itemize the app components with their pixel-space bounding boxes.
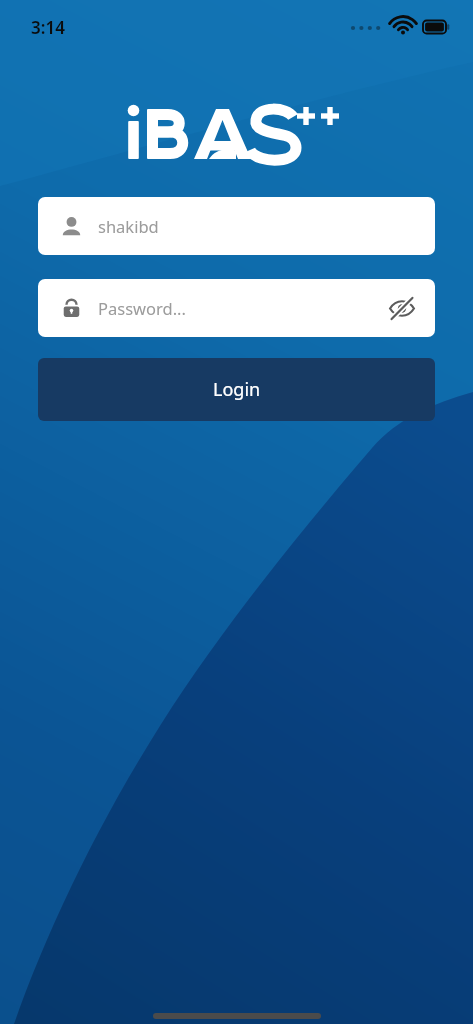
staticText: Password...: [98, 297, 186, 319]
button[interactable]: Show password: [379, 285, 425, 331]
other: iBAS plus plus logo: [126, 101, 347, 165]
staticText: shakibd: [98, 215, 159, 237]
button[interactable]: Password...: [38, 279, 435, 337]
button[interactable]: Login: [38, 358, 435, 421]
staticText: Login: [213, 377, 261, 402]
button[interactable]: shakibd: [38, 197, 435, 255]
staticText: 3:14: [31, 16, 65, 39]
